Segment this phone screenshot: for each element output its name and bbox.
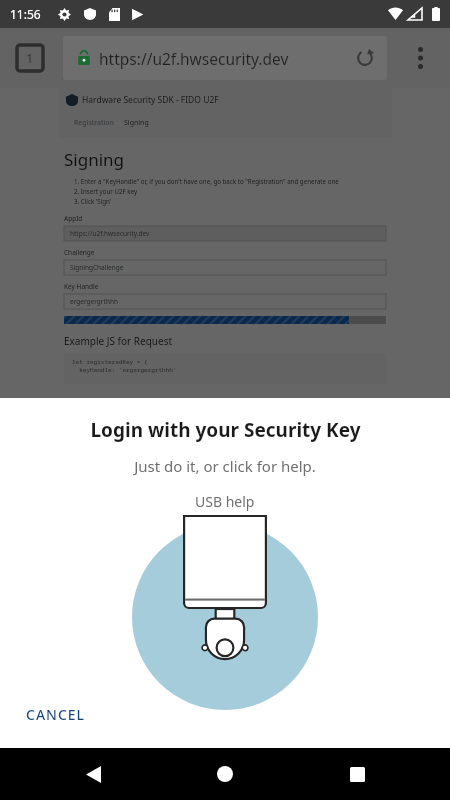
button[interactable]: https://u2f.hwsecurity.dev: [63, 36, 387, 80]
button[interactable]: Home: [204, 753, 246, 795]
staticText: CANCEL: [26, 705, 86, 724]
staticText: 11:56: [10, 6, 41, 22]
staticText: https://u2f.hwsecurity.dev: [70, 229, 150, 238]
button[interactable]: Back: [72, 753, 114, 795]
staticText: Signing: [64, 148, 125, 171]
button[interactable]: Recent apps: [336, 753, 378, 795]
button[interactable]: More options: [400, 38, 440, 78]
staticText: 3. Click 'Sign': [74, 197, 112, 205]
staticText: Key Handle: [64, 282, 99, 291]
staticText: ergergergrthhh: [70, 297, 118, 306]
button[interactable]: Tabs: [17, 45, 43, 71]
staticText: USB help: [195, 492, 255, 511]
staticText: Login with your Security Key: [90, 417, 361, 443]
button[interactable]: CANCEL: [10, 695, 102, 734]
staticText: Hardware Security SDK - FIDO U2F: [82, 94, 219, 106]
staticText: 1: [26, 49, 34, 67]
staticText: 2. Insert your U2F key: [74, 187, 138, 195]
staticText: Challenge: [64, 248, 95, 257]
staticText: Just do it, or click for help.: [134, 456, 316, 476]
staticText: Signing: [124, 118, 149, 128]
button[interactable]: USB help: [181, 488, 269, 515]
staticText: Example JS for Request: [64, 334, 173, 348]
staticText: https://u2f.hwsecurity.dev: [99, 48, 289, 69]
staticText: let registeredKey = {: [72, 358, 148, 366]
staticText: 1. Enter a "KeyHandle" or, if you don't …: [74, 177, 339, 185]
staticText: SigningChallenge: [70, 263, 124, 272]
staticText: Registration: [74, 118, 114, 128]
staticText: AppId: [64, 214, 83, 223]
staticText: keyHandle: 'ergergergrthhh': [72, 366, 177, 374]
button[interactable]: Reload: [351, 44, 379, 72]
